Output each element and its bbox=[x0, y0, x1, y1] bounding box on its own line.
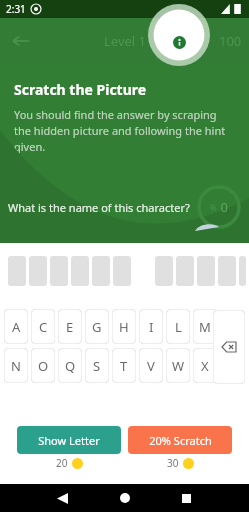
staticText: X bbox=[201, 357, 209, 375]
button[interactable]: Backspace bbox=[213, 310, 245, 384]
button[interactable]: A bbox=[4, 309, 28, 344]
staticText: N bbox=[11, 357, 21, 375]
staticText: 20% Scratch bbox=[149, 433, 212, 448]
staticText: 0 bbox=[217, 198, 228, 216]
button[interactable]: E bbox=[58, 309, 82, 344]
staticText: O bbox=[38, 357, 49, 375]
staticText: H bbox=[119, 318, 129, 336]
staticText: T bbox=[120, 357, 128, 375]
button[interactable]: G bbox=[85, 309, 109, 344]
staticText: % bbox=[210, 202, 217, 213]
button[interactable]: L bbox=[166, 309, 190, 344]
button[interactable]: X bbox=[193, 348, 217, 383]
staticText: S bbox=[93, 357, 101, 375]
staticText: V bbox=[147, 357, 155, 375]
staticText: What is the name of this character? bbox=[8, 200, 190, 215]
staticText: 2:31 bbox=[6, 2, 26, 16]
button[interactable]: V bbox=[139, 348, 163, 383]
staticText: 20 bbox=[56, 456, 68, 470]
button[interactable]: Info bbox=[148, 4, 210, 66]
staticText: E bbox=[66, 318, 74, 336]
staticText: 30 bbox=[167, 456, 179, 470]
staticText: 100 bbox=[219, 32, 242, 50]
button[interactable]: Back bbox=[6, 26, 36, 56]
staticText: M bbox=[199, 318, 211, 336]
staticText: Scratch the Picture bbox=[14, 80, 147, 99]
staticText: I bbox=[149, 318, 154, 336]
staticText: Show Letter bbox=[38, 433, 100, 448]
staticText: W bbox=[172, 357, 185, 375]
staticText: Q bbox=[65, 357, 76, 375]
staticText: Level 1 bbox=[104, 32, 146, 50]
button[interactable]: 20% Scratch bbox=[128, 426, 232, 454]
staticText: A bbox=[12, 318, 21, 336]
button[interactable]: H bbox=[112, 309, 136, 344]
staticText: L bbox=[175, 318, 182, 336]
staticText: You should find the answer by scraping t… bbox=[14, 107, 229, 154]
button[interactable]: O bbox=[31, 348, 55, 383]
button[interactable]: Q bbox=[58, 348, 82, 383]
staticText: G bbox=[92, 318, 102, 336]
button[interactable]: T bbox=[112, 348, 136, 383]
button[interactable]: S bbox=[85, 348, 109, 383]
button[interactable]: Show Letter bbox=[17, 426, 121, 454]
staticText: C bbox=[39, 318, 48, 336]
button[interactable]: I bbox=[139, 309, 163, 344]
button[interactable] bbox=[239, 256, 246, 286]
button[interactable]: N bbox=[4, 348, 28, 383]
button[interactable]: M bbox=[193, 309, 217, 344]
button[interactable]: C bbox=[31, 309, 55, 344]
button[interactable]: W bbox=[166, 348, 190, 383]
